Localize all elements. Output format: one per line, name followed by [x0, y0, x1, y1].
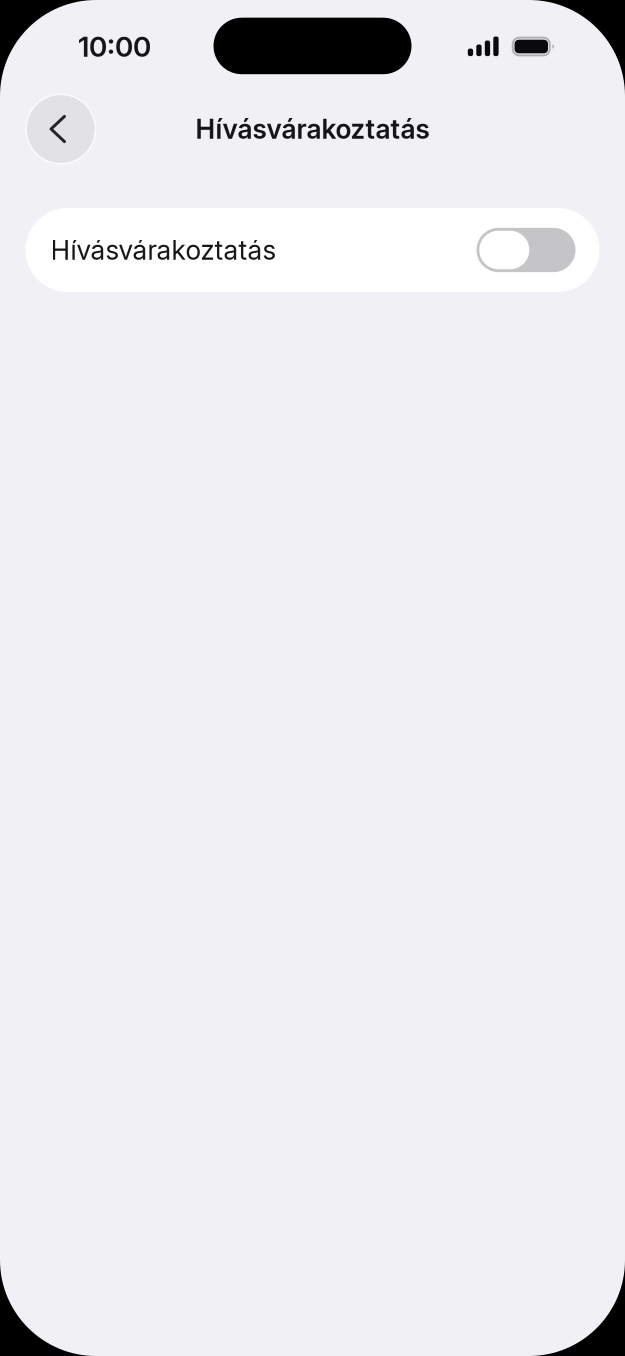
- staticText: Hívásvárakoztatás: [50, 234, 276, 266]
- button[interactable]: Hívásvárakoztatás: [25, 208, 599, 292]
- staticText: Hívásvárakoztatás: [195, 113, 429, 145]
- button[interactable]: Back: [26, 94, 95, 164]
- staticText: 10:00: [78, 30, 151, 63]
